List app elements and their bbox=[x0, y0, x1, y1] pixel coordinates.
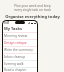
staticText: Read a chapter bbox=[4, 68, 27, 72]
button[interactable]: Inbox cleanup bbox=[3, 54, 37, 60]
button[interactable]: Morning review bbox=[3, 33, 37, 39]
staticText: Write the summary bbox=[4, 48, 33, 52]
button[interactable]: Evening walk bbox=[3, 61, 37, 67]
button[interactable]: Read a chapter bbox=[3, 68, 37, 72]
staticText: Plan your week and keep every single tas… bbox=[14, 4, 51, 12]
staticText: My Tasks bbox=[4, 26, 22, 31]
staticText: 9:41 bbox=[4, 21, 10, 25]
button[interactable]: Design critique bbox=[3, 40, 37, 46]
button[interactable]: Write the summary bbox=[3, 47, 37, 53]
staticText: Organise everything today bbox=[5, 14, 60, 20]
staticText: Design critique bbox=[4, 41, 27, 45]
staticText: Evening walk bbox=[4, 62, 24, 66]
staticText: Morning review bbox=[4, 34, 28, 38]
staticText: Inbox cleanup bbox=[4, 55, 26, 59]
